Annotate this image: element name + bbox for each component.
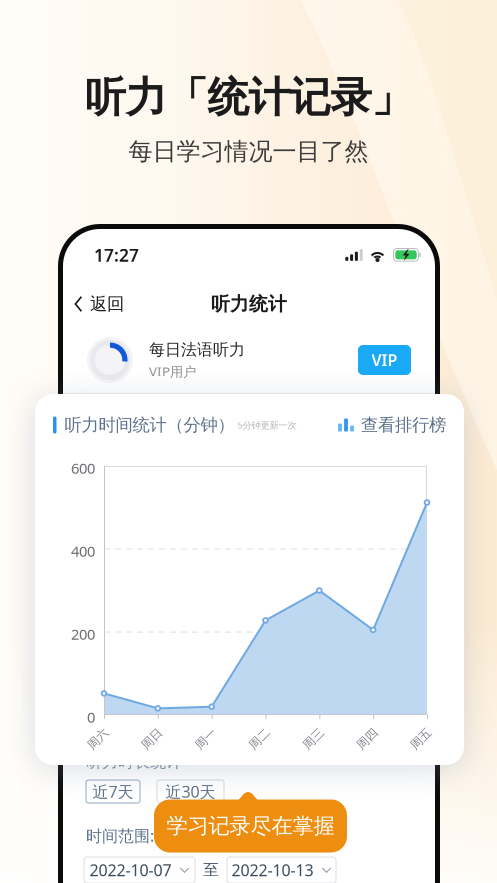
staticText: 返回 bbox=[90, 293, 124, 315]
button[interactable]: 返回 bbox=[63, 282, 135, 326]
button[interactable]: 近30天 bbox=[157, 780, 224, 803]
staticText: 每日学习情况一目了然 bbox=[128, 137, 368, 166]
staticText: 周二 bbox=[247, 732, 271, 746]
button[interactable]: 近7天 bbox=[86, 780, 140, 803]
staticText: 查看排行榜 bbox=[361, 414, 446, 436]
staticText: 听力时间统计（分钟） bbox=[64, 414, 234, 436]
staticText: 周一 bbox=[194, 732, 218, 746]
staticText: 周四 bbox=[355, 732, 379, 746]
staticText: 200 bbox=[71, 624, 95, 644]
staticText: 听力「统计记录」 bbox=[84, 72, 412, 123]
staticText: 周六 bbox=[86, 732, 110, 746]
staticText: 近7天 bbox=[92, 781, 133, 802]
staticText: 600 bbox=[71, 458, 95, 478]
staticText: 2022-10-13 bbox=[231, 859, 313, 881]
staticText: 每日法语听力 bbox=[149, 340, 245, 359]
staticText: 周日 bbox=[140, 732, 164, 746]
staticText: 0 bbox=[87, 707, 95, 727]
staticText: 17:27 bbox=[94, 243, 139, 266]
staticText: 近30天 bbox=[165, 781, 215, 802]
staticText: VIP bbox=[371, 349, 397, 371]
staticText: 5分钟更新一次 bbox=[237, 419, 296, 431]
staticText: 周三 bbox=[301, 732, 325, 746]
staticText: 2022-10-07 bbox=[89, 859, 171, 881]
staticText: 周五 bbox=[409, 732, 433, 746]
staticText: 学习记录尽在掌握 bbox=[166, 813, 334, 839]
button[interactable]: 2022-10-07 bbox=[84, 857, 195, 883]
staticText: 400 bbox=[71, 541, 95, 561]
button[interactable]: 查看排行榜 bbox=[338, 414, 446, 436]
staticText: 时间范围: bbox=[86, 825, 154, 846]
staticText: 听力时长统计 bbox=[86, 752, 182, 772]
staticText: 至 bbox=[203, 860, 219, 880]
staticText: 听力统计 bbox=[211, 292, 287, 315]
button[interactable]: VIP bbox=[358, 345, 411, 375]
staticText: VIP用户 bbox=[149, 362, 196, 380]
button[interactable]: 2022-10-13 bbox=[227, 857, 336, 883]
